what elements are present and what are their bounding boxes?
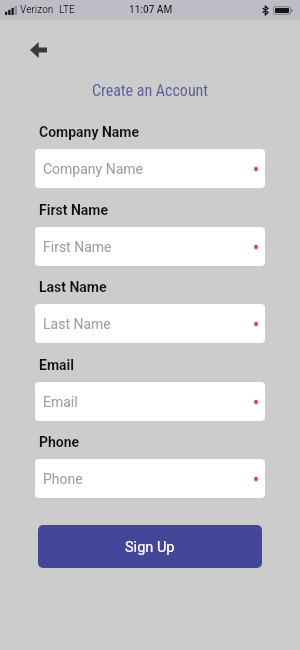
- staticText: First Name: [39, 202, 108, 218]
- button[interactable]: Last Name: [35, 304, 265, 343]
- button[interactable]: First Name: [35, 227, 265, 266]
- staticText: Phone: [39, 434, 80, 450]
- staticText: Email: [43, 394, 78, 410]
- button[interactable]: Email: [35, 382, 265, 421]
- staticText: First Name: [43, 239, 112, 255]
- button[interactable]: Sign Up: [38, 525, 262, 568]
- staticText: Company Name: [39, 124, 139, 140]
- button[interactable]: Phone: [35, 459, 265, 498]
- button[interactable]: Company Name: [35, 149, 265, 188]
- staticText: Last Name: [39, 279, 107, 295]
- staticText: Create an Account: [0, 81, 300, 100]
- staticText: Phone: [43, 471, 83, 487]
- staticText: LTE: [59, 4, 75, 16]
- staticText: Sign Up: [125, 539, 175, 556]
- staticText: Email: [39, 357, 74, 373]
- staticText: Company Name: [43, 161, 143, 177]
- staticText: Verizon: [20, 4, 54, 16]
- staticText: 11:07 AM: [129, 4, 173, 16]
- staticText: Last Name: [43, 316, 111, 332]
- button[interactable]: Back: [20, 31, 57, 68]
